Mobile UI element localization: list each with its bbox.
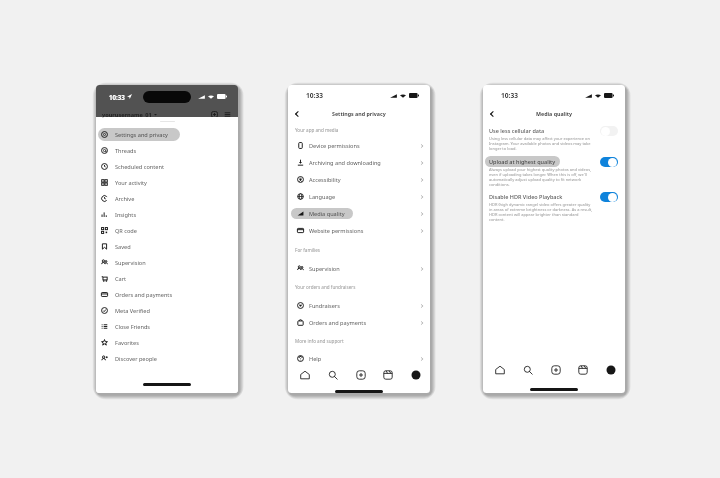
staticText: Settings and privacy <box>332 110 386 117</box>
staticText: Upload at highest quality <box>489 158 556 165</box>
button[interactable]: Threads <box>98 142 234 158</box>
button[interactable]: Insights <box>98 206 234 222</box>
staticText: Device permissions <box>309 142 360 150</box>
button[interactable]: Back <box>486 108 498 120</box>
button[interactable]: QR code <box>98 222 234 238</box>
staticText: Favorites <box>115 339 139 347</box>
staticText: 10:33 <box>109 93 125 101</box>
staticText: Supervision <box>309 265 340 273</box>
staticText: Accessibility <box>309 176 341 184</box>
staticText: Language <box>309 193 336 201</box>
staticText: 10:33 <box>306 91 323 100</box>
button[interactable]: Orders and payments <box>98 286 234 302</box>
staticText: Orders and payments <box>309 319 367 327</box>
button[interactable]: Search <box>326 368 340 382</box>
button[interactable]: Reels <box>576 363 590 377</box>
staticText: 10:33 <box>501 91 518 100</box>
staticText: Media quality <box>536 110 573 117</box>
button[interactable]: Use less cellular data <box>485 125 618 151</box>
staticText: Settings and privacy <box>115 131 168 139</box>
staticText: Your orders and fundraisers <box>295 284 356 290</box>
staticText: Website permissions <box>309 227 364 235</box>
button[interactable]: New post <box>210 110 219 119</box>
button[interactable]: Home <box>493 363 507 377</box>
button[interactable]: Website permissions <box>288 222 430 239</box>
staticText: Your app and media <box>295 127 339 133</box>
button[interactable]: Device permissions <box>288 137 430 154</box>
staticText: Threads <box>115 147 137 155</box>
button[interactable]: Favorites <box>98 334 234 350</box>
button[interactable]: Search <box>521 363 535 377</box>
staticText: Always upload your highest quality photo… <box>489 167 593 187</box>
staticText: HDR (high dynamic range) video offers gr… <box>489 202 593 222</box>
staticText: Supervision <box>115 259 146 267</box>
button[interactable]: Saved <box>98 238 234 254</box>
staticText: Saved <box>115 243 131 251</box>
staticText: Archiving and downloading <box>309 159 381 167</box>
button[interactable]: Home <box>298 368 312 382</box>
button[interactable]: Upload at highest quality <box>485 156 618 187</box>
button[interactable]: Archiving and downloading <box>288 154 430 171</box>
button[interactable]: Your activity <box>98 174 234 190</box>
button[interactable]: Profile <box>409 368 423 382</box>
staticText: Close Friends <box>115 323 151 331</box>
staticText: QR code <box>115 227 137 235</box>
staticText: Your activity <box>115 179 147 187</box>
button[interactable]: Reels <box>381 368 395 382</box>
staticText: Discover people <box>115 355 157 363</box>
staticText: Orders and payments <box>115 291 173 299</box>
button[interactable]: Menu <box>223 110 232 119</box>
staticText: Insights <box>115 211 137 219</box>
button[interactable]: Fundraisers <box>288 297 430 314</box>
button[interactable]: Create <box>354 368 368 382</box>
button[interactable]: Scheduled content <box>98 158 234 174</box>
button[interactable]: Back <box>291 108 303 120</box>
button[interactable]: Supervision <box>288 260 430 277</box>
staticText: Cart <box>115 275 127 283</box>
staticText: Help <box>309 355 322 363</box>
staticText: More info and support <box>295 338 344 344</box>
button[interactable]: Orders and payments <box>288 314 430 331</box>
button[interactable]: Supervision <box>98 254 234 270</box>
staticText: Use less cellular data <box>489 127 545 134</box>
button[interactable]: Discover people <box>98 350 234 366</box>
button[interactable]: Disable HDR Video Playback <box>485 191 618 222</box>
button[interactable]: Media quality <box>288 205 430 222</box>
button[interactable]: Settings and privacy <box>98 126 234 142</box>
staticText: Meta Verified <box>115 307 150 315</box>
staticText: Media quality <box>309 210 345 218</box>
button[interactable]: Profile <box>604 363 618 377</box>
button[interactable]: Help <box>288 350 430 367</box>
button[interactable]: Language <box>288 188 430 205</box>
staticText: Disable HDR Video Playback <box>489 193 563 200</box>
button[interactable]: Archive <box>98 190 234 206</box>
button[interactable]: Meta Verified <box>98 302 234 318</box>
staticText: Archive <box>115 195 135 203</box>
button[interactable]: Cart <box>98 270 234 286</box>
button[interactable]: Close Friends <box>98 318 234 334</box>
staticText: Using less cellular data may affect your… <box>489 136 593 151</box>
button[interactable]: Create <box>549 363 563 377</box>
button[interactable]: Accessibility <box>288 171 430 188</box>
staticText: yourusername_01 <box>102 111 152 119</box>
staticText: Fundraisers <box>309 302 340 310</box>
staticText: Scheduled content <box>115 163 164 171</box>
staticText: For families <box>295 247 321 253</box>
